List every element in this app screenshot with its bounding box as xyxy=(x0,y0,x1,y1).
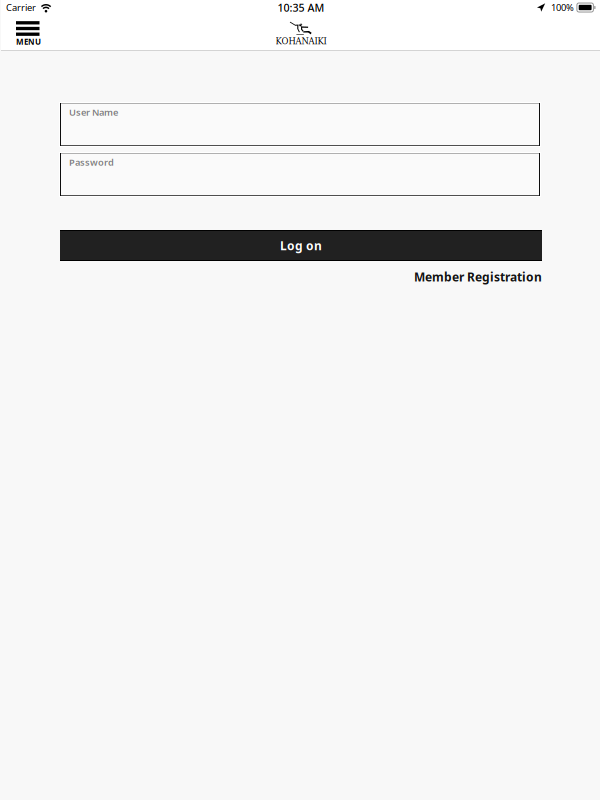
staticText: MENU xyxy=(16,36,41,47)
staticText: Member Registration xyxy=(414,269,542,285)
button[interactable]: Menu xyxy=(16,21,44,47)
staticText: User Name xyxy=(69,106,118,118)
button[interactable]: Password xyxy=(60,152,542,197)
staticText: 10:35 AM xyxy=(277,0,324,15)
button[interactable]: User Name xyxy=(60,102,542,147)
button[interactable]: Log on xyxy=(60,230,542,261)
staticText: KOHANAIKI xyxy=(275,37,326,46)
staticText: Carrier xyxy=(6,1,36,14)
staticText: 100% xyxy=(551,1,574,14)
staticText: Password xyxy=(69,156,114,168)
staticText: Log on xyxy=(280,237,322,253)
button[interactable]: Member Registration xyxy=(60,269,542,285)
